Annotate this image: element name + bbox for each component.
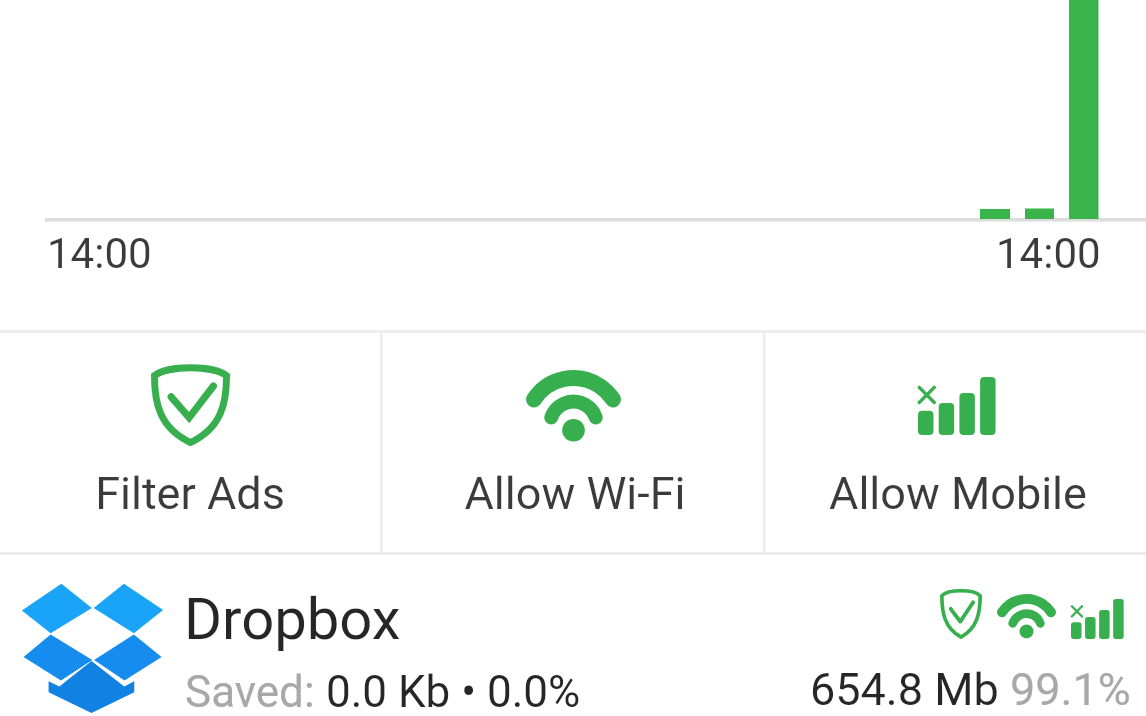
staticText: 14:00 bbox=[996, 229, 1101, 278]
staticText: 99.1% bbox=[1010, 663, 1131, 716]
other: Filter Ads bbox=[151, 366, 230, 446]
other: Wi-Fi allowed bbox=[997, 594, 1056, 639]
other: Allow Mobile bbox=[918, 377, 999, 435]
other: Mobile data allowed bbox=[1071, 599, 1126, 639]
other: Allow Wi-Fi bbox=[526, 370, 621, 443]
staticText: 0.0 Kb • 0.0% bbox=[326, 666, 581, 716]
staticText: Saved: bbox=[185, 666, 326, 716]
staticText: Allow Mobile bbox=[829, 467, 1087, 520]
staticText: Filter Ads bbox=[95, 467, 285, 520]
button[interactable]: Allow Wi-Fi bbox=[385, 333, 765, 552]
button[interactable]: Allow Mobile bbox=[766, 333, 1146, 552]
staticText: Dropbox bbox=[184, 585, 401, 653]
button[interactable]: Dropbox bbox=[0, 555, 1146, 716]
staticText: Allow Wi-Fi bbox=[464, 467, 686, 520]
button[interactable]: Filter Ads bbox=[0, 333, 380, 552]
other: Ad filtering enabled bbox=[940, 590, 982, 639]
staticText: 14:00 bbox=[47, 229, 152, 278]
staticText: 654.8 Mb bbox=[810, 663, 1010, 716]
